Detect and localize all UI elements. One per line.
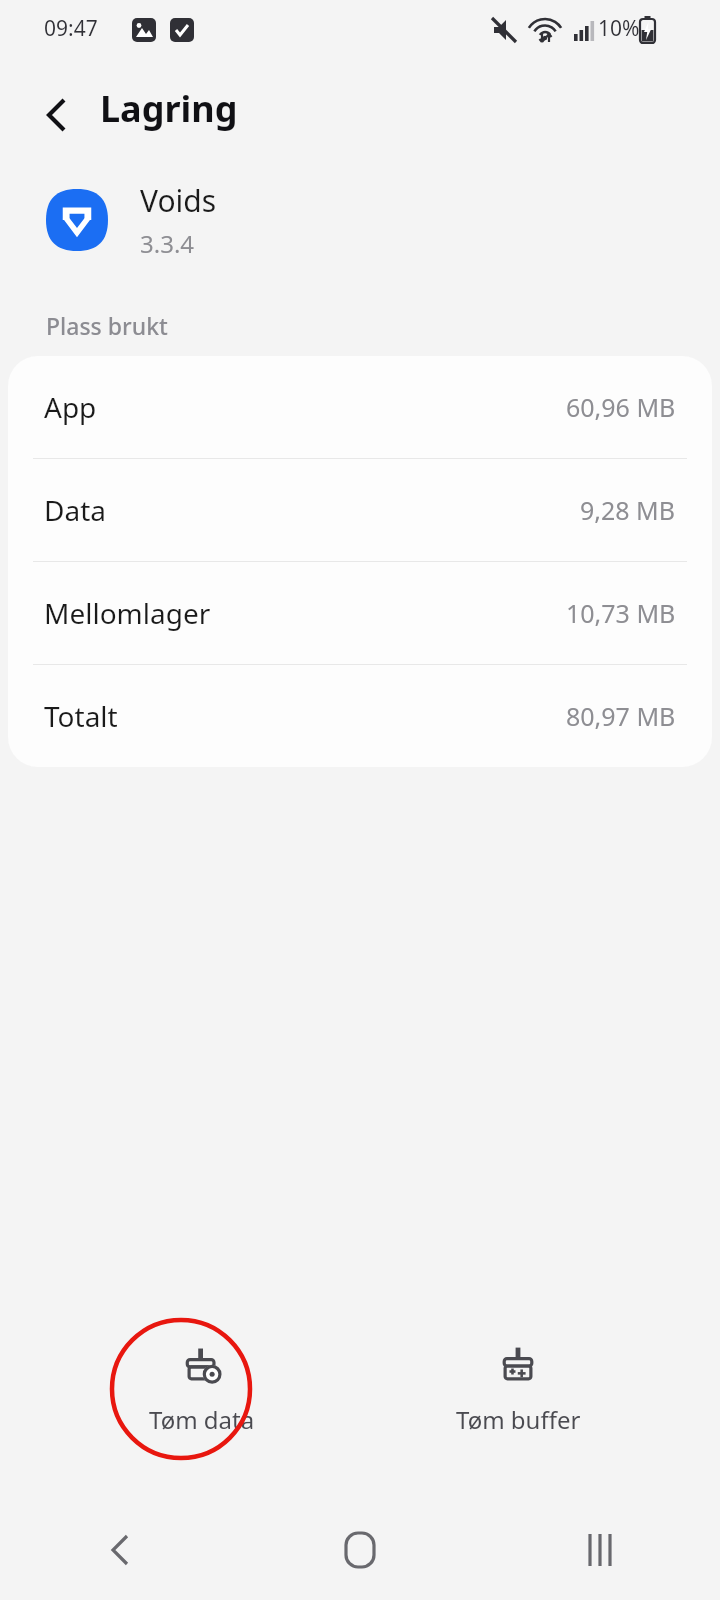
staticText: Tøm data [149, 1403, 255, 1436]
button[interactable]: Mellomlager [8, 562, 712, 664]
button[interactable]: Recents [480, 1500, 720, 1600]
button[interactable]: App [8, 356, 712, 458]
staticText: 80,97 MB [566, 699, 676, 733]
staticText: App [44, 388, 97, 426]
button[interactable]: Tøm data [87, 1333, 317, 1446]
staticText: Lagring [100, 84, 238, 133]
staticText: Totalt [44, 697, 118, 735]
staticText: Mellomlager [44, 594, 211, 632]
staticText: Data [44, 491, 106, 529]
staticText: 09:47 [44, 14, 98, 43]
button[interactable]: Data [8, 459, 712, 561]
staticText: 10,73 MB [566, 596, 676, 630]
button[interactable]: Totalt [8, 665, 712, 767]
button[interactable]: Home [240, 1500, 480, 1600]
staticText: Voids [140, 180, 217, 221]
staticText: 3.3.4 [140, 227, 195, 260]
staticText: 9,28 MB [580, 493, 676, 527]
staticText: Plass brukt [46, 310, 168, 341]
button[interactable]: Back [0, 1500, 240, 1600]
button[interactable]: Back [22, 81, 90, 149]
button[interactable]: Tøm buffer [403, 1333, 633, 1446]
staticText: Tøm buffer [456, 1403, 581, 1436]
staticText: 10% [598, 14, 640, 43]
staticText: 60,96 MB [566, 390, 676, 424]
